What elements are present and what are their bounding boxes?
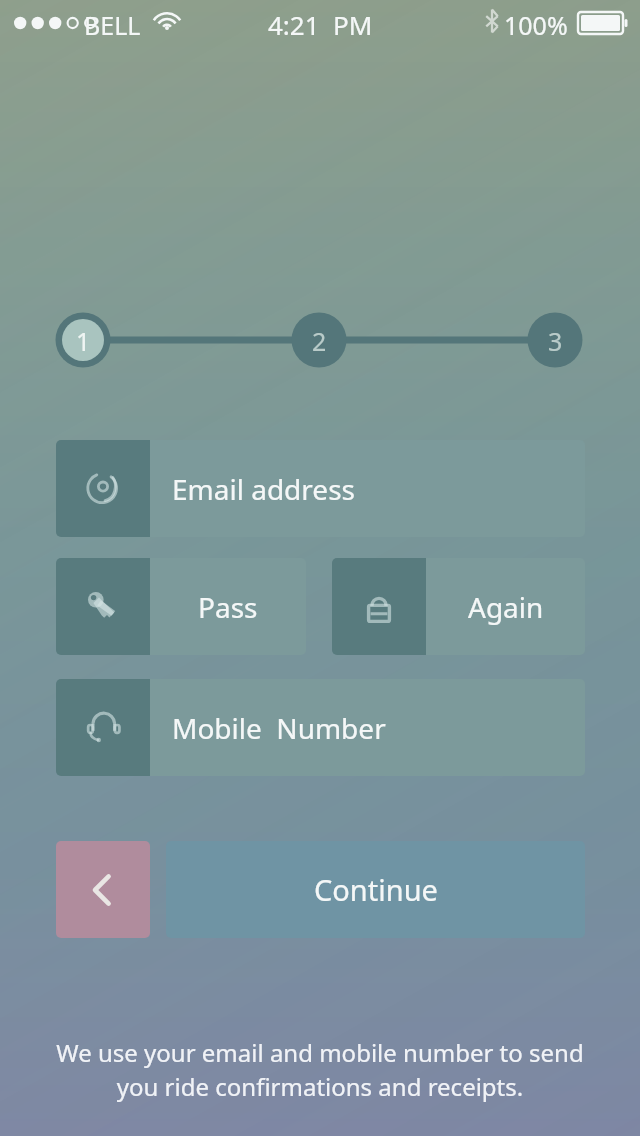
staticText: We use your email and mobile number to s… — [46, 1036, 594, 1103]
staticText: BELL — [84, 8, 141, 42]
staticText: Again — [468, 588, 544, 626]
button[interactable]: Back — [56, 841, 150, 938]
button[interactable]: Step 3 — [528, 313, 583, 368]
staticText: 100% — [504, 8, 568, 42]
staticText: Pass — [198, 588, 258, 626]
button[interactable]: Password — [56, 558, 306, 655]
staticText: 4:21 PM — [268, 7, 373, 42]
button[interactable]: Repeat password — [332, 558, 585, 655]
staticText: 2 — [312, 324, 327, 358]
button[interactable]: Continue — [166, 841, 585, 938]
button[interactable]: Step 2 — [292, 313, 347, 368]
staticText: Email address — [172, 470, 355, 508]
staticText: 1 — [76, 324, 91, 358]
button[interactable]: Step 1 — [56, 313, 111, 368]
staticText: Continue — [314, 870, 438, 909]
button[interactable]: Mobile number — [56, 679, 585, 776]
button[interactable]: Email address — [56, 440, 585, 537]
staticText: Mobile Number — [172, 709, 386, 747]
staticText: 3 — [548, 324, 563, 358]
